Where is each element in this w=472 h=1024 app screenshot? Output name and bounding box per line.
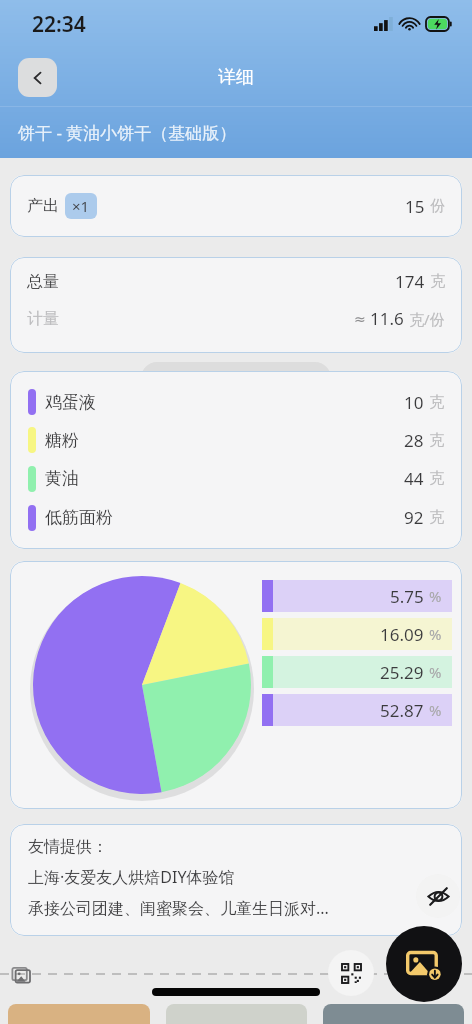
staticText: 174 xyxy=(395,270,425,293)
button[interactable]: 鸡蛋液 xyxy=(28,383,444,421)
staticText: 92 xyxy=(404,506,424,529)
button[interactable]: Hide xyxy=(416,874,460,918)
button[interactable]: 25.29 xyxy=(262,656,452,688)
button[interactable]: 鸡蛋液 xyxy=(10,371,462,549)
staticText: 克 xyxy=(429,393,444,412)
staticText: 28 xyxy=(404,429,424,452)
staticText: 52.87 xyxy=(380,699,424,722)
staticText: % xyxy=(429,624,442,644)
staticText: 低筋面粉 xyxy=(45,507,113,528)
staticText: 22:34 xyxy=(32,10,86,39)
staticText: 上海·友爱友人烘焙DIY体验馆 xyxy=(28,866,235,888)
staticText: 11.6 xyxy=(370,307,404,330)
staticText: 10 xyxy=(404,391,424,414)
staticText: 克 xyxy=(429,508,444,527)
button[interactable]: QR code xyxy=(328,950,374,996)
staticText: 产出 xyxy=(27,196,59,216)
button[interactable]: 52.87 xyxy=(262,694,452,726)
staticText: % xyxy=(429,586,442,606)
staticText: 鸡蛋液 xyxy=(45,392,96,413)
button[interactable]: 黄油 xyxy=(28,459,444,498)
staticText: 糖粉 xyxy=(45,430,79,451)
staticText: 友情提供： xyxy=(28,837,108,857)
button[interactable]: 5.75 xyxy=(10,561,462,809)
staticText: 黄油 xyxy=(45,468,79,489)
button[interactable]: 低筋面粉 xyxy=(28,498,444,537)
button[interactable]: 总量 xyxy=(10,257,462,353)
staticText: 克 xyxy=(429,431,444,450)
button[interactable]: Save image xyxy=(386,926,462,1002)
button[interactable]: 16.09 xyxy=(262,618,452,650)
button[interactable]: 糖粉 xyxy=(28,421,444,459)
staticText: 承接公司团建、闺蜜聚会、儿童生日派对... xyxy=(28,897,329,919)
staticText: 25.29 xyxy=(380,661,424,684)
staticText: 克 xyxy=(430,272,445,291)
button[interactable]: ×1 xyxy=(72,196,90,216)
staticText: 克/份 xyxy=(409,309,445,329)
staticText: % xyxy=(429,700,442,720)
staticText: 份 xyxy=(430,197,445,216)
staticText: 详细 xyxy=(218,66,254,89)
staticText: 44 xyxy=(404,467,424,490)
staticText: % xyxy=(429,662,442,682)
button[interactable]: 5.75 xyxy=(262,580,452,612)
staticText: ×1 xyxy=(72,196,90,216)
staticText: 15 xyxy=(405,195,425,218)
staticText: 计量 xyxy=(27,309,59,329)
staticText: 5.75 xyxy=(390,585,424,608)
staticText: 饼干 - 黄油小饼干（基础版） xyxy=(18,121,237,144)
staticText: ≈ xyxy=(354,311,366,327)
staticText: 16.09 xyxy=(380,623,424,646)
staticText: 克 xyxy=(429,469,444,488)
button[interactable]: 产出 xyxy=(10,175,462,237)
button[interactable]: 友情提供： xyxy=(10,824,462,936)
button[interactable]: Back xyxy=(18,58,57,97)
staticText: 总量 xyxy=(27,272,59,292)
